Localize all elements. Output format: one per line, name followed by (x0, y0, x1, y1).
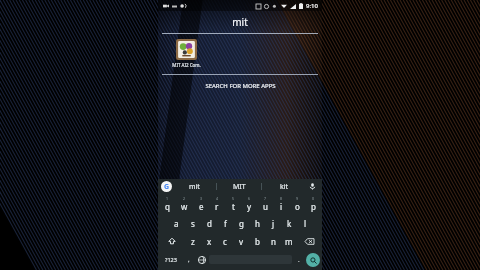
staticText: a (174, 218, 179, 229)
staticText: z (191, 236, 195, 247)
staticText: o (295, 201, 300, 212)
button[interactable]: h (249, 215, 265, 231)
staticText: kit (280, 182, 289, 192)
button[interactable]: s (185, 215, 201, 231)
staticText: 6 (248, 196, 251, 201)
staticText: 1 (166, 196, 169, 201)
button[interactable]: Search (306, 253, 320, 267)
button[interactable]: Shift (159, 233, 184, 249)
staticText: m (285, 236, 293, 247)
button[interactable]: j (265, 215, 281, 231)
button[interactable]: x (201, 233, 217, 249)
staticText: t (232, 201, 235, 212)
staticText: x (207, 236, 212, 247)
staticText: r (215, 201, 219, 212)
button[interactable]: mit (158, 11, 322, 33)
button[interactable]: Comma (182, 251, 195, 268)
button[interactable]: g (233, 215, 249, 231)
button[interactable]: c (217, 233, 233, 249)
staticText: l (304, 218, 307, 229)
button[interactable]: k (281, 215, 297, 231)
staticText: 7 (264, 196, 267, 201)
button[interactable]: 7 (257, 195, 273, 213)
staticText: ?123 (165, 256, 177, 263)
staticText: mit (189, 182, 200, 192)
button[interactable]: Voice input (306, 179, 319, 194)
staticText: 2 (183, 196, 186, 201)
staticText: j (272, 218, 275, 229)
staticText: 5 (232, 196, 235, 201)
staticText: u (263, 201, 268, 212)
button[interactable]: Google (161, 181, 172, 192)
staticText: 4 (216, 196, 219, 201)
staticText: 0 (312, 196, 315, 201)
staticText: mit (232, 15, 248, 29)
button[interactable]: Backspace (297, 233, 321, 249)
staticText: b (255, 236, 260, 247)
button[interactable]: v (233, 233, 249, 249)
button[interactable]: z (184, 233, 201, 249)
button[interactable]: 2 (176, 195, 193, 213)
staticText: 3 (200, 196, 203, 201)
staticText: h (255, 218, 260, 229)
staticText: MIT (233, 182, 246, 192)
staticText: 9:10 (306, 2, 318, 10)
button[interactable]: MIT AI2 Com. (166, 39, 206, 68)
button[interactable]: ?123 (160, 251, 182, 268)
button[interactable]: f (217, 215, 233, 231)
button[interactable]: 3 (193, 195, 209, 213)
staticText: i (280, 201, 283, 212)
button[interactable]: SEARCH FOR MORE APPS (158, 75, 322, 97)
button[interactable]: Change keyboard language (195, 251, 209, 268)
staticText: e (199, 201, 204, 212)
staticText: v (239, 236, 244, 247)
button[interactable]: a (168, 215, 185, 231)
staticText: p (311, 201, 316, 212)
button[interactable]: 8 (273, 195, 289, 213)
button[interactable]: b (249, 233, 265, 249)
staticText: g (239, 218, 244, 229)
button[interactable]: m (281, 233, 297, 249)
staticText: 9 (296, 196, 299, 201)
staticText: d (207, 218, 212, 229)
button[interactable]: 6 (241, 195, 257, 213)
button[interactable]: 4 (209, 195, 225, 213)
staticText: k (287, 218, 292, 229)
button[interactable]: n (265, 233, 281, 249)
staticText: SEARCH FOR MORE APPS (205, 82, 276, 90)
staticText: G (164, 182, 170, 192)
staticText: MIT AI2 Com. (172, 62, 201, 68)
button[interactable]: d (201, 215, 217, 231)
button[interactable]: MIT (217, 179, 261, 194)
staticText: 8 (280, 196, 283, 201)
button[interactable]: kit (262, 179, 306, 194)
button[interactable]: 1 (159, 195, 176, 213)
button[interactable]: mit (172, 179, 216, 194)
staticText: c (223, 236, 227, 247)
staticText: y (247, 201, 252, 212)
button[interactable]: 9 (289, 195, 305, 213)
button[interactable]: l (297, 215, 313, 231)
staticText: s (191, 218, 195, 229)
staticText: n (271, 236, 276, 247)
staticText: w (181, 201, 188, 212)
button[interactable]: Period (292, 251, 306, 268)
staticText: , (188, 256, 190, 264)
staticText: q (165, 201, 170, 212)
staticText: f (224, 218, 227, 229)
button[interactable]: 0 (305, 195, 321, 213)
staticText: . (298, 256, 300, 264)
button[interactable]: 5 (225, 195, 241, 213)
